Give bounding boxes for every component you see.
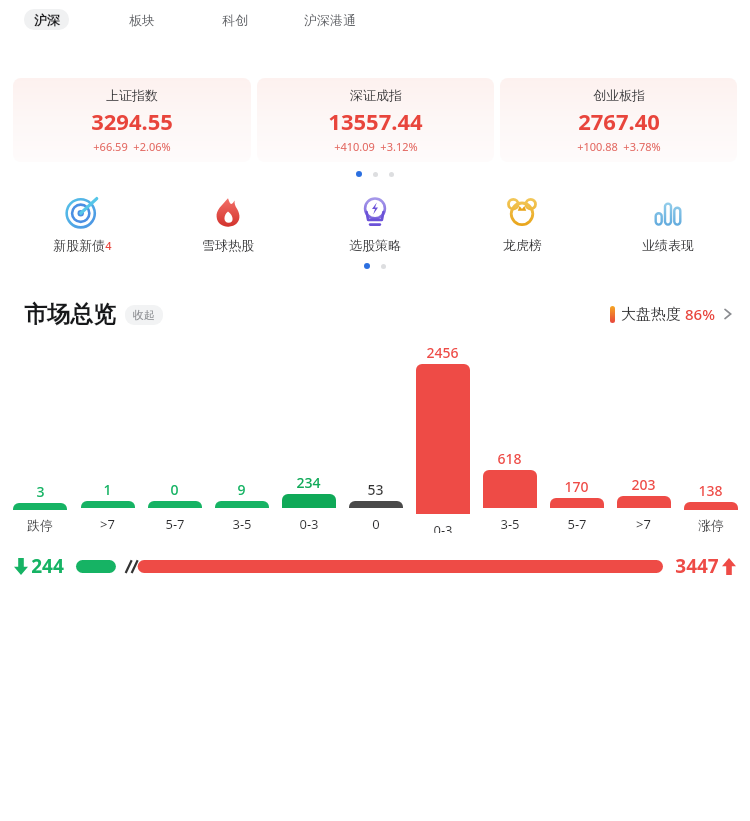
button[interactable]: 0	[141, 480, 208, 533]
button[interactable]: 龙虎榜	[457, 191, 587, 253]
staticText: 0	[170, 480, 179, 499]
button[interactable]: 选股策略	[310, 191, 440, 253]
staticText: 13557.44	[328, 106, 423, 136]
button[interactable]: 深证成指	[257, 78, 494, 162]
staticText: 龙虎榜	[503, 237, 542, 253]
staticText: 618	[497, 449, 522, 468]
staticText: 3-5	[500, 515, 520, 533]
staticText: 86%	[685, 304, 715, 324]
button[interactable]: 2456	[409, 343, 476, 533]
button[interactable]: 业绩表现	[603, 191, 733, 253]
button[interactable]: 138	[677, 481, 744, 533]
staticText: 业绩表现	[642, 237, 694, 253]
button[interactable]: 53	[342, 480, 409, 533]
button[interactable]: 科创	[211, 9, 259, 30]
staticText: 板块	[129, 12, 155, 28]
staticText: 大盘热度	[621, 305, 681, 324]
button[interactable]: 沪深	[24, 9, 69, 30]
staticText: 3447	[675, 553, 719, 579]
button[interactable]: 新股新债	[17, 191, 147, 253]
staticText: 203	[631, 475, 656, 494]
staticText: 2767.40	[578, 106, 660, 136]
staticText: 上证指数	[106, 87, 158, 103]
staticText: 跌停	[27, 517, 53, 533]
button[interactable]: 203	[610, 475, 677, 533]
button[interactable]: 上证指数	[13, 78, 251, 162]
staticText: >7	[636, 515, 651, 533]
staticText: 9	[237, 480, 246, 499]
staticText: 市场总览	[24, 300, 116, 329]
button[interactable]: 收起	[133, 308, 155, 322]
staticText: 234	[296, 473, 321, 492]
button[interactable]: 234	[275, 473, 342, 533]
staticText: 创业板指	[593, 87, 645, 103]
staticText: +3.12%	[380, 139, 418, 154]
staticText: 0-3	[299, 515, 319, 533]
staticText: 沪深港通	[304, 12, 356, 28]
staticText: +100.88	[577, 139, 618, 154]
staticText: 新股新债	[53, 237, 105, 253]
staticText: +66.59	[93, 139, 128, 154]
button[interactable]: 板块	[118, 9, 166, 30]
button[interactable]: 沪深港通	[294, 9, 366, 30]
button[interactable]: 雪球热股	[163, 191, 293, 253]
staticText: 科创	[222, 12, 248, 28]
staticText: >7	[100, 515, 115, 533]
staticText: 138	[698, 481, 723, 500]
staticText: +2.06%	[133, 139, 171, 154]
staticText: 3	[36, 482, 45, 501]
staticText: +3.78%	[623, 139, 661, 154]
staticText: 沪深	[34, 12, 60, 28]
button[interactable]: 1	[74, 480, 141, 533]
button[interactable]: 创业板指	[500, 78, 737, 162]
staticText: 雪球热股	[202, 237, 254, 253]
staticText: 涨停	[698, 517, 724, 533]
button[interactable]: 3	[6, 482, 74, 533]
button[interactable]: 大盘热度	[610, 304, 734, 324]
staticText: 4	[105, 238, 112, 253]
staticText: +410.09	[334, 139, 375, 154]
staticText: 3-5	[232, 515, 252, 533]
staticText: 5-7	[165, 515, 185, 533]
other: 查看大盘热度详情	[722, 308, 734, 320]
button[interactable]: 618	[476, 449, 543, 533]
staticText: 170	[564, 477, 589, 496]
button[interactable]: 170	[543, 477, 610, 533]
staticText: 2456	[426, 343, 459, 362]
staticText: 0	[372, 515, 380, 533]
staticText: 244	[31, 553, 64, 579]
staticText: 深证成指	[350, 87, 402, 103]
staticText: 3294.55	[91, 106, 173, 136]
staticText: 5-7	[567, 515, 587, 533]
staticText: 收起	[133, 308, 155, 322]
button[interactable]: 9	[208, 480, 275, 533]
staticText: 0-3	[433, 521, 453, 533]
staticText: 选股策略	[349, 237, 401, 253]
staticText: 53	[367, 480, 384, 499]
staticText: 1	[103, 480, 112, 499]
